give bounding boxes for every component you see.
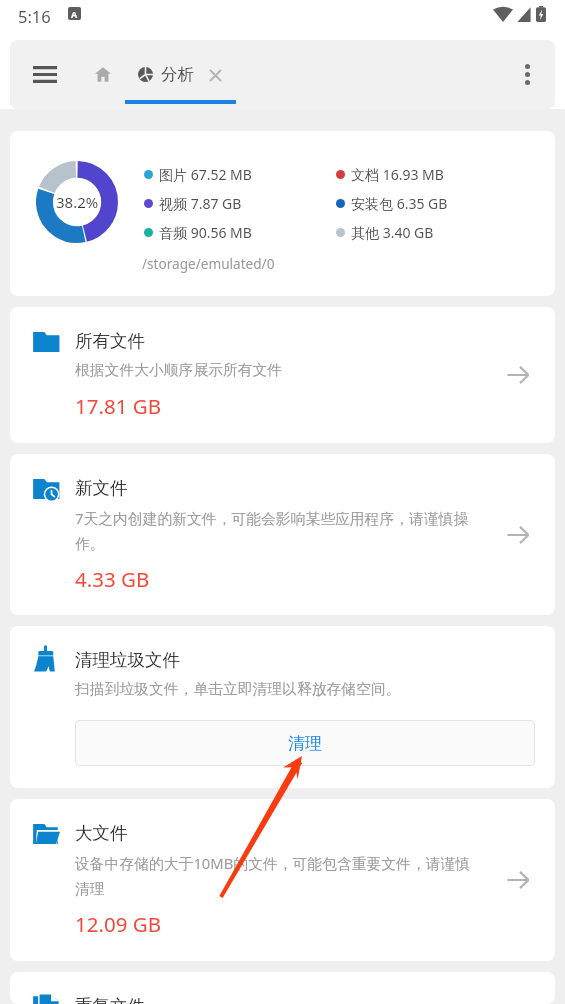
staticText: A <box>71 8 78 20</box>
staticText: 38.2% <box>56 192 99 212</box>
button[interactable]: 新文件 <box>10 454 555 615</box>
staticText: 设备中存储的大于10MB的文件，可能包含重要文件，请谨慎清理 <box>75 853 481 898</box>
staticText: 所有文件 <box>75 330 145 352</box>
staticText: 清理垃圾文件 <box>75 649 180 671</box>
button[interactable]: Close tab <box>205 65 225 85</box>
staticText: 音频 90.56 MB <box>159 223 252 242</box>
button[interactable]: 所有文件 <box>10 307 555 443</box>
staticText: 视频 7.87 GB <box>159 194 242 213</box>
button[interactable]: 大文件 <box>10 799 555 961</box>
staticText: 4.33 GB <box>75 565 150 593</box>
staticText: 17.81 GB <box>75 392 161 420</box>
staticText: 文档 16.93 MB <box>351 165 444 184</box>
staticText: 大文件 <box>75 822 128 844</box>
staticText: 重复文件 <box>75 995 145 1004</box>
staticText: 12.09 GB <box>75 910 161 938</box>
staticText: 新文件 <box>75 477 128 499</box>
button[interactable]: Home <box>81 40 125 109</box>
staticText: 根据文件大小顺序展示所有文件 <box>75 361 283 380</box>
staticText: 7天之内创建的新文件，可能会影响某些应用程序，请谨慎操作。 <box>75 508 481 553</box>
button[interactable]: 重复文件 <box>10 972 555 1004</box>
button[interactable]: 分析 <box>135 40 228 109</box>
staticText: 扫描到垃圾文件，单击立即清理以释放存储空间。 <box>75 680 401 699</box>
staticText: 清理 <box>288 733 322 754</box>
button[interactable]: More options <box>501 40 553 109</box>
staticText: 5:16 <box>18 5 51 27</box>
staticText: 图片 67.52 MB <box>159 165 252 184</box>
staticText: /storage/emulated/0 <box>142 254 275 273</box>
staticText: 其他 3.40 GB <box>351 223 434 242</box>
button[interactable]: Menu <box>17 40 73 109</box>
button[interactable]: 清理 <box>75 720 535 766</box>
staticText: 分析 <box>161 64 194 85</box>
staticText: 安装包 6.35 GB <box>351 194 448 213</box>
